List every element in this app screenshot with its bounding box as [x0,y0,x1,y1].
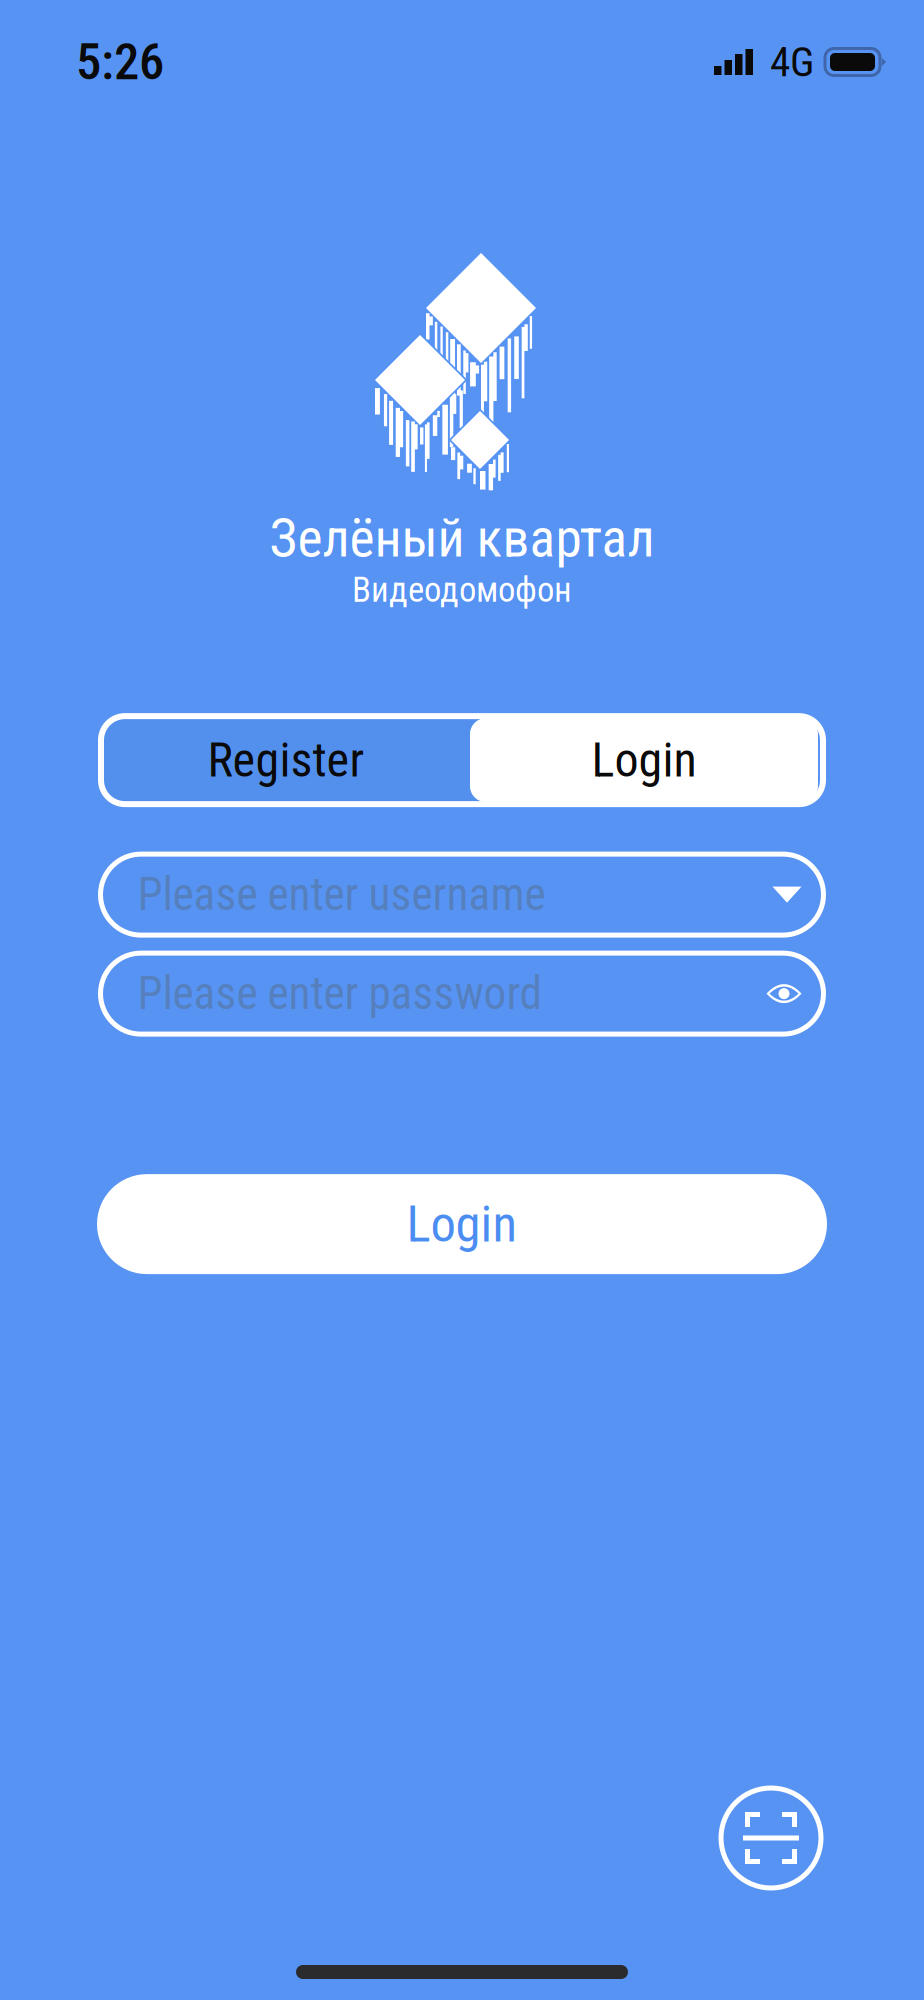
staticText: Login [591,732,696,788]
staticText: Видеодомофон [352,569,572,610]
button[interactable]: Scan QR code [719,1786,823,1890]
staticText: 5:26 [76,32,164,92]
staticText: Please enter username [137,868,545,921]
staticText: Зелёный квартал [269,507,654,569]
button[interactable]: Please enter username [100,854,823,935]
button[interactable]: Login [470,718,822,802]
staticText: Login [406,1194,517,1254]
staticText: Please enter password [137,967,541,1020]
button[interactable]: Login [97,1174,827,1274]
button[interactable]: Register [102,717,470,803]
staticText: Register [207,732,364,788]
staticText: 4G [770,38,814,86]
button[interactable]: Please enter password [100,953,823,1034]
